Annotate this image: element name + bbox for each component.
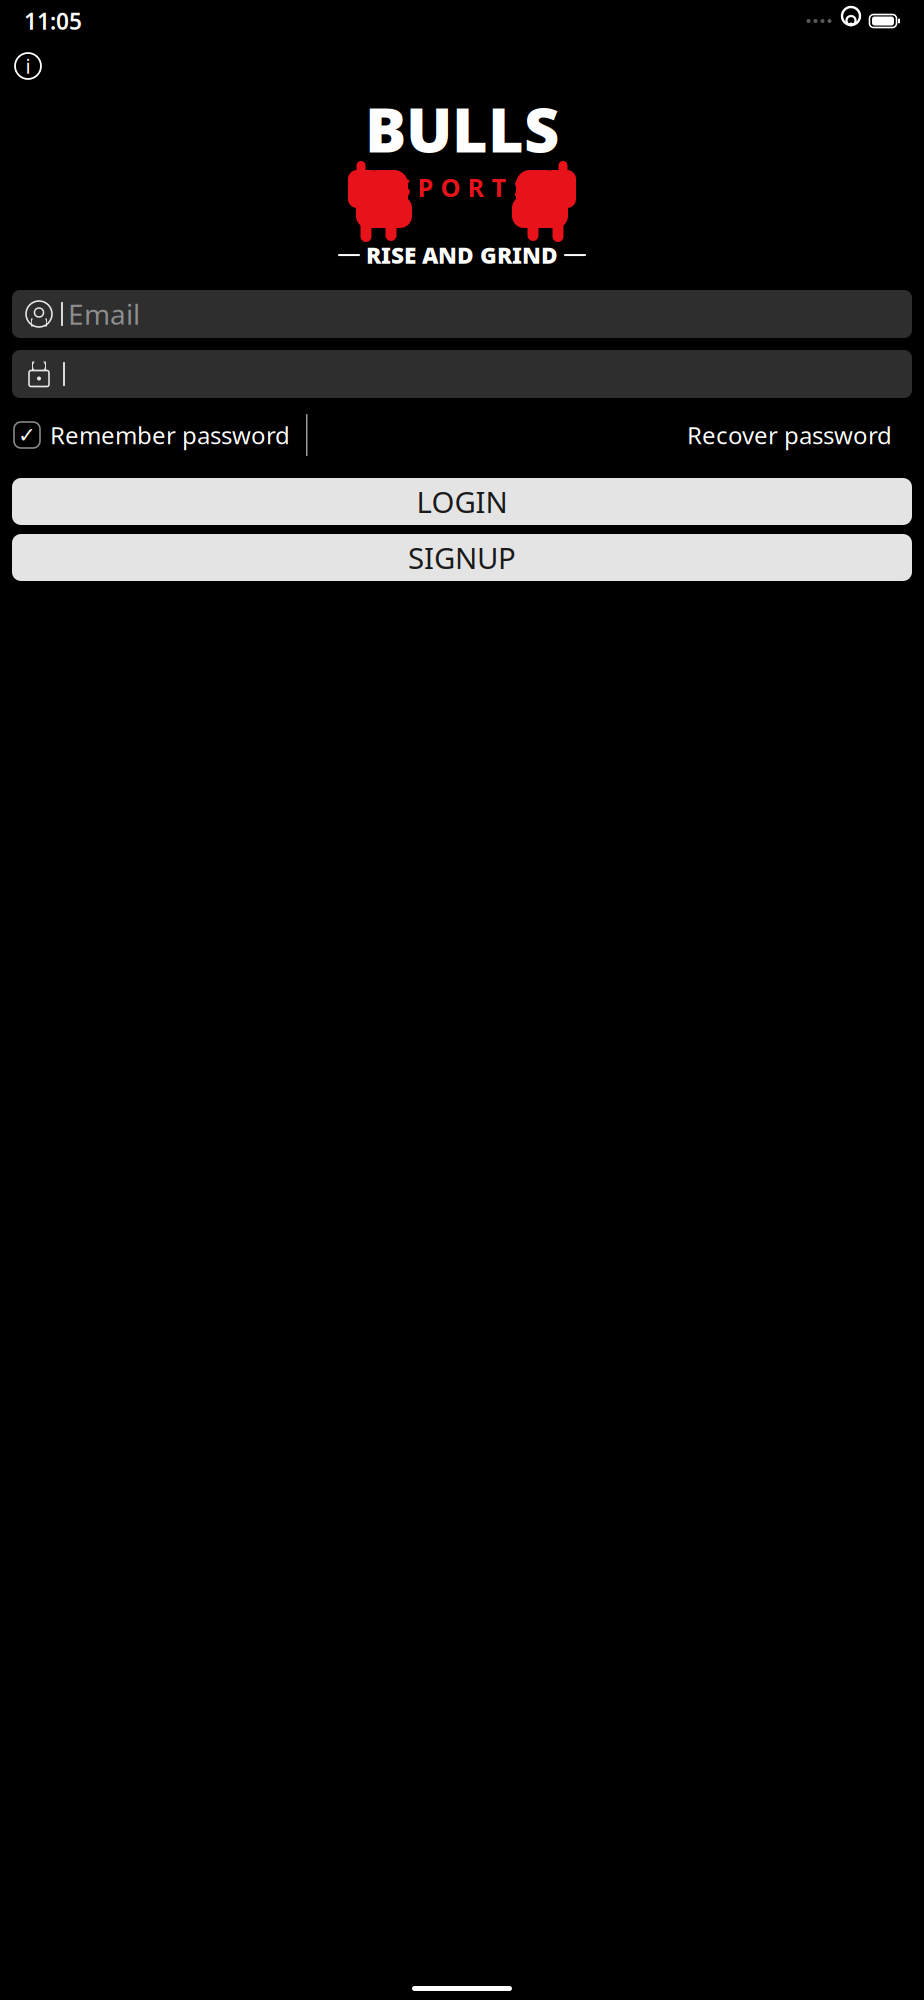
button[interactable]: ✓: [14, 413, 290, 457]
staticText: ✓: [18, 423, 36, 447]
button[interactable]: LOGIN: [12, 478, 912, 525]
button[interactable]: Recover password: [679, 413, 900, 457]
staticText: Remember password: [50, 419, 290, 451]
staticText: i: [25, 53, 30, 79]
staticText: Email: [68, 295, 140, 333]
staticText: 11:05: [24, 6, 82, 36]
staticText: S P O R T S: [396, 170, 527, 204]
staticText: BULLS: [365, 88, 559, 169]
staticText: RISE AND GRIND: [366, 240, 558, 270]
staticText: LOGIN: [416, 482, 507, 521]
staticText: SIGNUP: [408, 538, 516, 577]
button[interactable]: Information: [6, 44, 50, 88]
staticText: Recover password: [687, 419, 892, 451]
button[interactable]: SIGNUP: [12, 534, 912, 581]
